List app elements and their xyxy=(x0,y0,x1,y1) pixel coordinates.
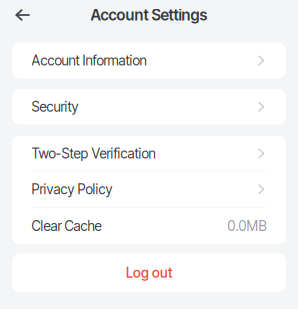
button[interactable]: Security xyxy=(12,89,286,125)
button[interactable]: Back xyxy=(8,1,38,29)
staticText: 0.0MB xyxy=(227,218,266,234)
button[interactable]: Privacy Policy xyxy=(12,172,286,207)
staticText: Log out xyxy=(126,264,172,281)
staticText: Account Information xyxy=(31,52,146,69)
button[interactable]: Two-Step Verification xyxy=(12,136,286,171)
button[interactable]: Log out xyxy=(0,254,298,292)
button[interactable]: Clear Cache xyxy=(12,208,286,244)
staticText: Account Settings xyxy=(90,6,207,24)
staticText: Two-Step Verification xyxy=(31,145,155,162)
staticText: Security xyxy=(31,98,78,115)
staticText: Clear Cache xyxy=(31,218,101,234)
staticText: Privacy Policy xyxy=(31,181,112,198)
button[interactable]: Account Information xyxy=(12,43,286,78)
